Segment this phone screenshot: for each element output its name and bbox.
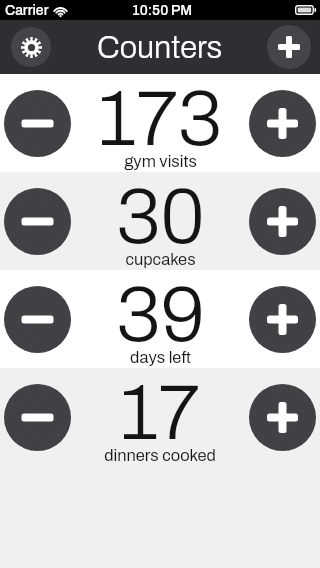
staticText: 39 (116, 273, 205, 357)
staticText: Counters (97, 31, 223, 65)
staticText: Carrier (5, 3, 49, 18)
staticText: cupcakes (125, 251, 196, 269)
staticText: gym visits (124, 153, 197, 171)
staticText: days left (130, 349, 191, 367)
button[interactable]: Decrement days left (4, 286, 71, 353)
button[interactable]: Increment cupcakes (249, 188, 316, 255)
button[interactable]: Decrement gym visits (4, 90, 71, 157)
button[interactable]: Decrement cupcakes (4, 188, 71, 255)
button[interactable]: Decrement dinners cooked (4, 384, 71, 451)
staticText: dinners cooked (104, 447, 216, 465)
staticText: 30 (116, 175, 205, 259)
staticText: 173 (98, 77, 222, 161)
staticText: 10:50 PM (132, 3, 193, 18)
button[interactable]: Settings (11, 27, 51, 67)
button[interactable]: Increment dinners cooked (249, 384, 316, 451)
button[interactable]: Add counter (267, 25, 311, 69)
button[interactable]: Increment gym visits (249, 90, 316, 157)
staticText: 17 (120, 371, 200, 455)
button[interactable]: Increment days left (249, 286, 316, 353)
